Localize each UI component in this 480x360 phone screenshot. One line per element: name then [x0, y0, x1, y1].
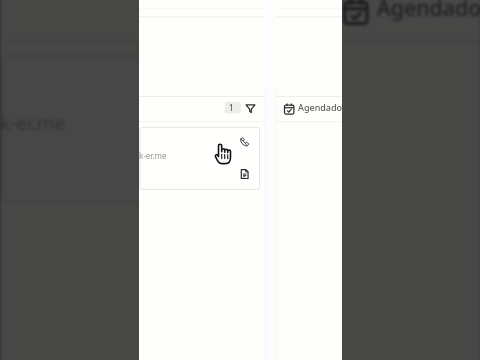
button[interactable]: Ligar: [232, 71, 268, 106]
button[interactable]: Filtrar: [244, 102, 257, 115]
button[interactable]: Agendado: [298, 101, 342, 113]
button[interactable]: Documento: [235, 149, 270, 185]
staticText: Agendado: [298, 101, 342, 113]
staticText: k-er.me: [0, 109, 66, 135]
staticText: 1: [229, 102, 234, 113]
staticText: k-er.me: [139, 150, 167, 161]
button[interactable]: [2, 54, 284, 194]
button[interactable]: [140, 127, 259, 186]
button[interactable]: Documento: [238, 167, 253, 182]
button[interactable]: Ligar: [237, 134, 252, 149]
staticText: Agendado: [377, 0, 480, 21]
button[interactable]: Agendado: [377, 0, 480, 21]
